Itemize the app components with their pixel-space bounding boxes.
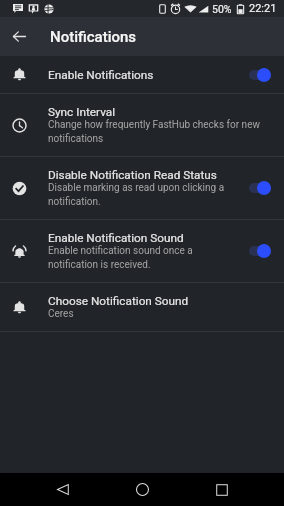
button[interactable]: Toggle setting xyxy=(249,68,271,82)
staticText: Enable Notifications xyxy=(48,68,154,82)
staticText: Enable notification sound once a notific… xyxy=(48,245,234,271)
button[interactable]: Disable Notification Read Status xyxy=(0,157,284,219)
staticText: 50% xyxy=(212,3,232,15)
button[interactable]: Toggle setting xyxy=(249,181,271,195)
staticText: Enable Notification Sound xyxy=(48,231,184,245)
button[interactable]: Back xyxy=(46,473,80,506)
staticText: Sync Interval xyxy=(48,105,116,119)
button[interactable]: Recent apps xyxy=(205,473,239,506)
staticText: Choose Notification Sound xyxy=(48,294,189,308)
staticText: 22:21 xyxy=(249,2,277,15)
staticText: Ceres xyxy=(48,308,74,320)
staticText: Disable Notification Read Status xyxy=(48,168,217,182)
button[interactable]: Choose Notification Sound xyxy=(0,283,284,331)
button[interactable]: Navigate up xyxy=(0,17,39,56)
button[interactable]: Sync Interval xyxy=(0,94,284,156)
button[interactable]: Enable Notifications xyxy=(0,56,284,93)
button[interactable]: Toggle setting xyxy=(249,244,271,258)
button[interactable]: Home xyxy=(125,473,159,506)
button[interactable]: Enable Notification Sound xyxy=(0,220,284,282)
staticText: Notifications xyxy=(50,28,137,46)
staticText: Change how frequently FastHub checks for… xyxy=(48,119,270,145)
staticText: Disable marking as read upon clicking a … xyxy=(48,182,234,208)
